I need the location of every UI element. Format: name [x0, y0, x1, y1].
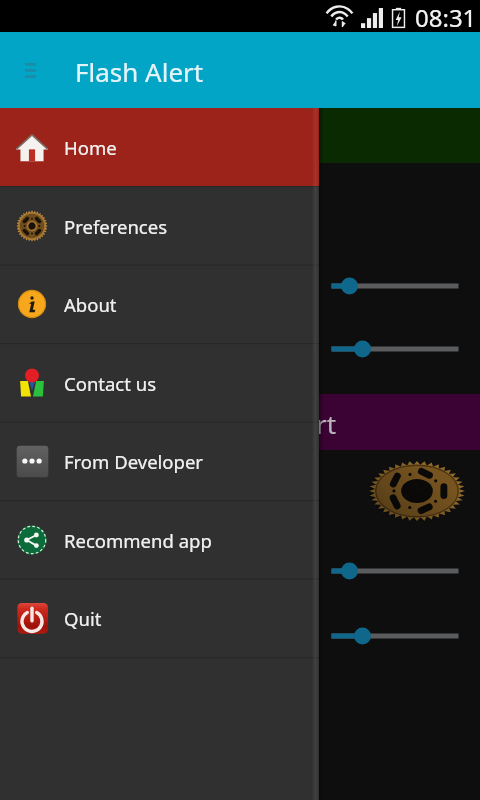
button[interactable]: From Developer [0, 422, 319, 500]
button[interactable]: Recommend app [0, 501, 319, 579]
staticText: About [64, 292, 117, 317]
button[interactable]: Contact us [0, 344, 319, 422]
button[interactable]: Home [0, 108, 319, 186]
button[interactable]: About [0, 265, 319, 343]
staticText: 08:31 [415, 1, 477, 33]
staticText: Quit [64, 606, 102, 631]
staticText: Flash Alert [208, 406, 337, 441]
button[interactable]: Quit [0, 579, 319, 657]
button[interactable]: Open navigation drawer [8, 48, 52, 92]
staticText: Contact us [64, 371, 157, 396]
staticText: Recommend app [64, 528, 212, 553]
staticText: From Developer [64, 449, 203, 474]
staticText: Flash Alert [75, 54, 204, 89]
staticText: Preferences [64, 214, 168, 239]
button[interactable]: Preferences [0, 187, 319, 265]
staticText: Home [64, 135, 117, 160]
